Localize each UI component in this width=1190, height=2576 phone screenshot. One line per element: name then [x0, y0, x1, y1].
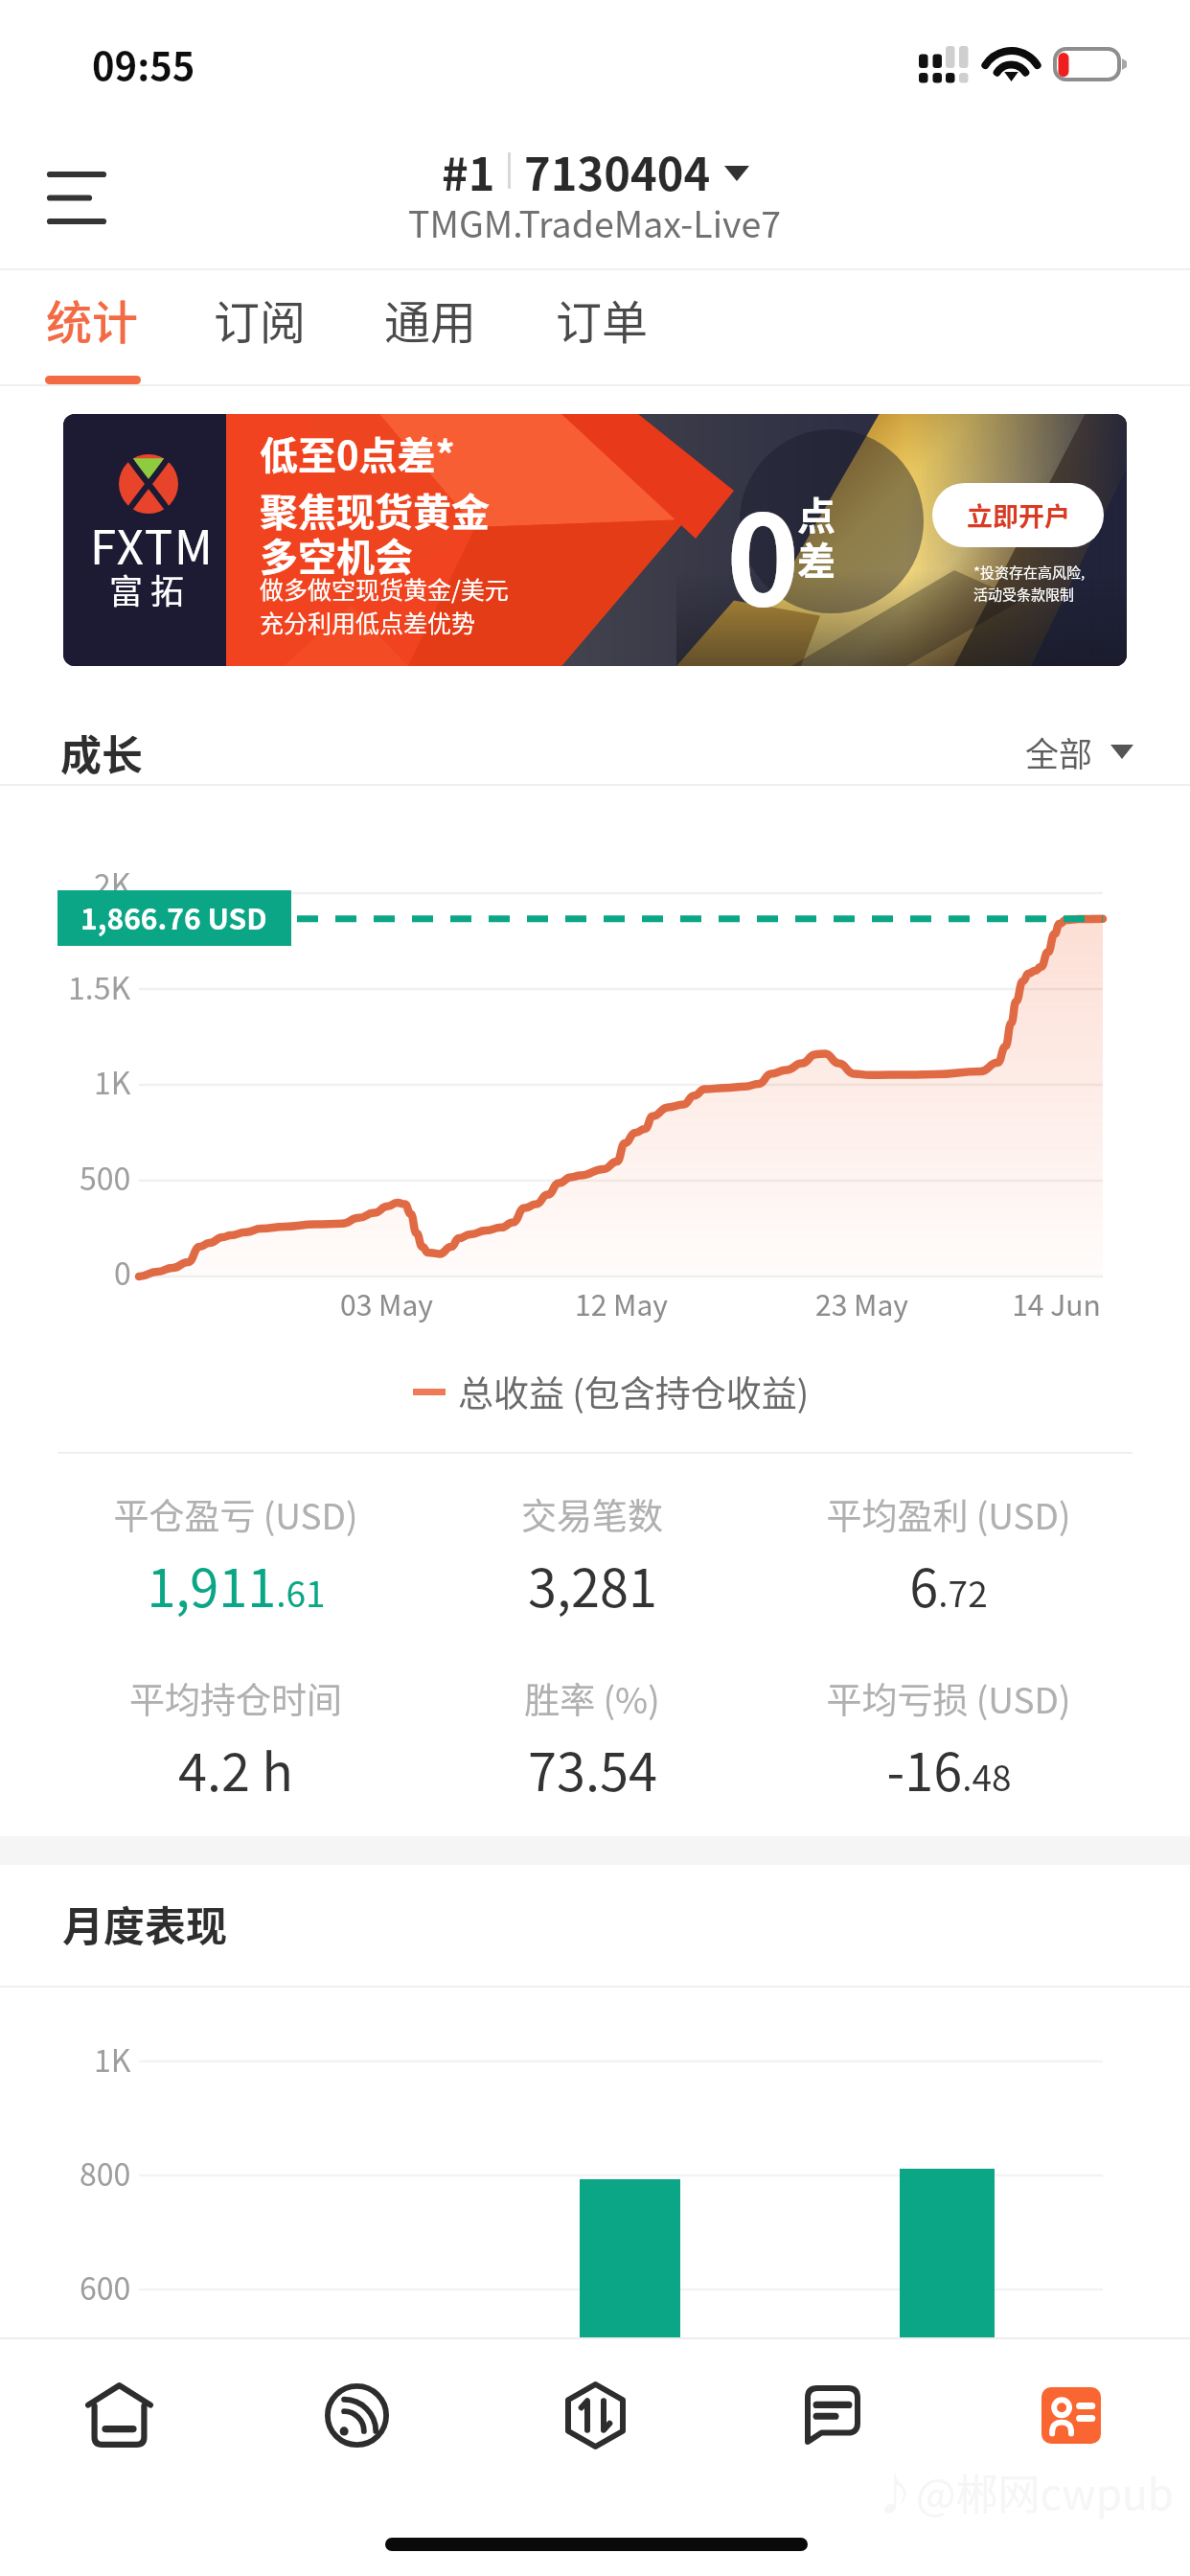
staticText: 平均盈利 (USD): [826, 1488, 1071, 1540]
staticText: 23 May: [815, 1282, 908, 1323]
staticText: 点: [797, 486, 835, 541]
button[interactable]: Home: [0, 2339, 238, 2491]
staticText: 成长: [60, 723, 143, 782]
staticText: -16.48: [886, 1731, 1012, 1805]
staticText: 09:55: [92, 36, 195, 92]
staticText: 月度表现: [62, 1894, 227, 1953]
staticText: *投资存在高风险,: [973, 562, 1086, 583]
staticText: 全部: [1025, 727, 1093, 776]
button[interactable]: 平均持仓时间: [57, 1672, 414, 1837]
button[interactable]: 订单: [535, 270, 669, 383]
staticText: 6.72: [909, 1547, 988, 1621]
staticText: 总收益 (包含持仓收益): [458, 1366, 810, 1417]
staticText: 通用: [384, 286, 477, 353]
staticText: TMGM.TradeMax-Live7: [408, 195, 782, 247]
staticText: 73.54: [528, 1731, 657, 1805]
button[interactable]: Trade: [476, 2339, 714, 2491]
staticText: 活动受条款限制: [973, 584, 1075, 605]
staticText: 0: [114, 1250, 131, 1294]
staticText: 1.5K: [68, 964, 131, 1008]
staticText: 0: [726, 461, 800, 641]
staticText: 胜率 (%): [524, 1672, 660, 1724]
staticText: 12 May: [575, 1282, 668, 1323]
staticText: 4.2 h: [178, 1731, 293, 1805]
staticText: 2K: [94, 861, 131, 905]
staticText: 平仓盈亏 (USD): [113, 1488, 358, 1540]
button[interactable]: 平均盈利 (USD): [770, 1488, 1127, 1653]
button[interactable]: 全部: [1025, 727, 1133, 776]
button[interactable]: 交易笔数: [414, 1488, 770, 1653]
staticText: 1K: [94, 1059, 131, 1103]
staticText: 03 May: [340, 1282, 433, 1323]
button[interactable]: 平仓盈亏 (USD): [57, 1488, 414, 1653]
staticText: 14 Jun: [1012, 1282, 1101, 1323]
staticText: 1,911.61: [147, 1547, 326, 1621]
button[interactable]: 订阅: [193, 270, 327, 383]
button[interactable]: Signals: [238, 2339, 475, 2491]
button[interactable]: 平均亏损 (USD): [770, 1672, 1127, 1837]
staticText: 聚焦现货黄金: [260, 482, 490, 538]
button[interactable]: 通用: [363, 270, 497, 383]
staticText: 富拓: [109, 564, 193, 613]
staticText: 充分利用低点差优势: [260, 605, 476, 639]
staticText: 7130404: [524, 138, 711, 203]
staticText: 1,866.76 USD: [80, 896, 267, 937]
staticText: 立即开户: [967, 496, 1070, 534]
staticText: 差: [797, 531, 835, 586]
button[interactable]: 立即开户: [932, 483, 1104, 547]
staticText: 低至0点差*: [260, 425, 455, 481]
staticText: 统计: [46, 286, 139, 353]
staticText: ♪@郴网cwpub: [874, 2461, 1174, 2522]
button[interactable]: 胜率 (%): [414, 1672, 770, 1837]
button[interactable]: FXTM advertisement: [63, 414, 1127, 666]
button[interactable]: #1: [408, 138, 782, 255]
staticText: 1K: [94, 2036, 131, 2081]
button[interactable]: Menu: [33, 159, 121, 238]
button[interactable]: 统计: [25, 270, 159, 383]
staticText: 500: [80, 1155, 131, 1199]
staticText: 多空机会: [260, 527, 413, 583]
staticText: 平均持仓时间: [129, 1672, 342, 1724]
staticText: FXTM: [90, 510, 215, 578]
staticText: 订单: [556, 286, 649, 353]
staticText: 做多做空现货黄金/美元: [260, 571, 509, 606]
button[interactable]: Profile: [952, 2339, 1190, 2491]
staticText: #1: [442, 138, 495, 203]
staticText: 800: [80, 2150, 131, 2195]
staticText: 3,281: [528, 1547, 657, 1621]
staticText: 600: [80, 2265, 131, 2309]
staticText: 订阅: [214, 286, 307, 353]
staticText: 平均亏损 (USD): [826, 1672, 1071, 1724]
button[interactable]: Messages: [714, 2339, 951, 2491]
staticText: 交易笔数: [521, 1488, 663, 1540]
